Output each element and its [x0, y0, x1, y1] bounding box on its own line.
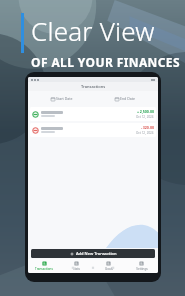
staticText: Clear View [31, 13, 155, 48]
button[interactable]: - 320.00 [30, 123, 156, 137]
button[interactable]: Goals [92, 259, 125, 273]
button[interactable]: End Date [114, 95, 136, 102]
staticText: Goals [105, 267, 113, 271]
button[interactable]: Add New Transaction [31, 249, 155, 258]
staticText: Oct 12, 2024 [136, 115, 154, 119]
staticText: Oct 12, 2024 [136, 131, 154, 135]
staticText: Add New Transaction [76, 251, 117, 256]
button[interactable]: + 2,500.00 [30, 107, 156, 121]
staticText: Transactions [35, 267, 53, 271]
staticText: Settings [136, 267, 148, 271]
button[interactable]: Settings [125, 259, 158, 273]
staticText: + 2,500.00 [136, 109, 154, 114]
button[interactable]: Transactions [28, 259, 60, 273]
staticText: End Date [120, 96, 135, 101]
staticText: Transactions [81, 84, 106, 89]
button[interactable]: Stats [60, 259, 92, 273]
staticText: Start Date [56, 96, 73, 101]
staticText: Stats [73, 267, 80, 271]
staticText: - 320.00 [140, 125, 154, 130]
staticText: OF ALL YOUR FINANCES [31, 54, 180, 70]
button[interactable]: Start Date [50, 95, 74, 102]
